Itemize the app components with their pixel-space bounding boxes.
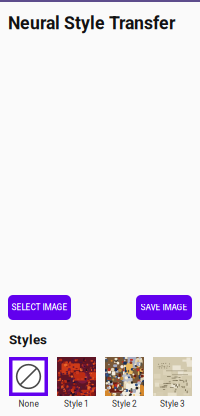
staticText: Style 2	[112, 399, 137, 409]
button[interactable]: None	[9, 357, 48, 409]
button[interactable]: SAVE IMAGE	[136, 295, 192, 320]
button[interactable]: Style 3	[153, 357, 192, 409]
staticText: None	[18, 399, 38, 409]
staticText: SELECT IMAGE	[11, 303, 67, 312]
button[interactable]: Style 2	[105, 357, 144, 409]
staticText: Style 1	[64, 399, 89, 409]
staticText: Styles	[9, 332, 47, 348]
staticText: SAVE IMAGE	[140, 303, 187, 312]
staticText: Neural Style Transfer	[8, 13, 175, 34]
staticText: Style 3	[160, 399, 185, 409]
button[interactable]: SELECT IMAGE	[8, 295, 71, 320]
button[interactable]: Style 1	[57, 357, 96, 409]
